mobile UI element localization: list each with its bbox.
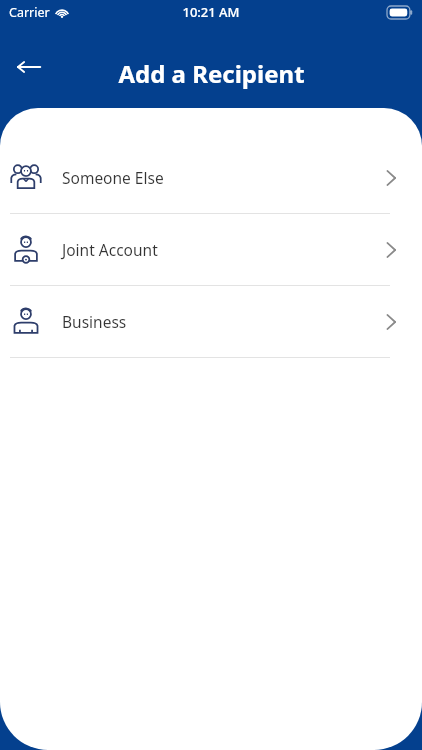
staticText: Someone Else bbox=[62, 167, 164, 188]
button[interactable]: Back bbox=[6, 44, 52, 90]
staticText: Joint Account bbox=[62, 239, 158, 260]
staticText: Business bbox=[62, 311, 127, 332]
staticText: Carrier bbox=[9, 4, 50, 21]
button[interactable]: Joint Account bbox=[0, 214, 422, 285]
staticText: 10:21 AM bbox=[182, 3, 240, 21]
button[interactable]: Someone Else bbox=[0, 142, 422, 213]
button[interactable]: Business bbox=[0, 286, 422, 357]
staticText: Add a Recipient bbox=[118, 57, 305, 90]
